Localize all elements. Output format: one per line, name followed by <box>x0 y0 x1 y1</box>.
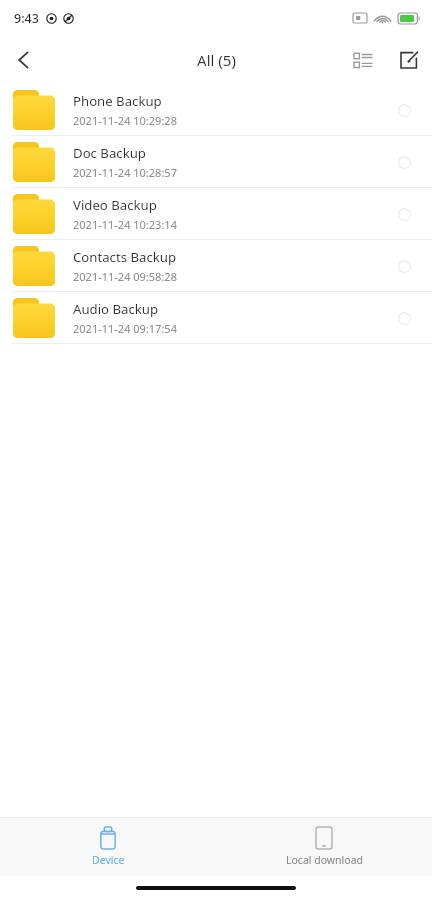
button[interactable]: Back <box>0 36 48 84</box>
button[interactable]: Video Backup <box>0 188 432 240</box>
staticText: Video Backup <box>73 196 157 214</box>
staticText: Device <box>92 853 125 867</box>
staticText: Audio Backup <box>73 300 159 318</box>
button[interactable]: List view <box>340 37 386 83</box>
staticText: Local download <box>286 853 363 867</box>
staticText: 2021-11-24 10:29:28 <box>73 113 177 128</box>
button[interactable]: Phone Backup <box>0 84 432 136</box>
button[interactable]: Doc Backup <box>0 136 432 188</box>
button[interactable]: Edit <box>386 37 432 83</box>
staticText: 9:43 <box>14 10 39 27</box>
staticText: Doc Backup <box>73 144 146 162</box>
staticText: All (5) <box>197 50 236 70</box>
staticText: 2021-11-24 09:17:54 <box>73 321 177 336</box>
staticText: Contacts Backup <box>73 248 177 266</box>
button[interactable]: Audio Backup <box>0 292 432 344</box>
staticText: 2021-11-24 09:58:28 <box>73 269 177 284</box>
staticText: 2021-11-24 10:23:14 <box>73 217 177 232</box>
button[interactable]: Device <box>0 827 216 867</box>
button[interactable]: Contacts Backup <box>0 240 432 292</box>
button[interactable]: Local download <box>216 827 432 867</box>
staticText: Phone Backup <box>73 92 162 110</box>
staticText: 2021-11-24 10:28:57 <box>73 165 177 180</box>
